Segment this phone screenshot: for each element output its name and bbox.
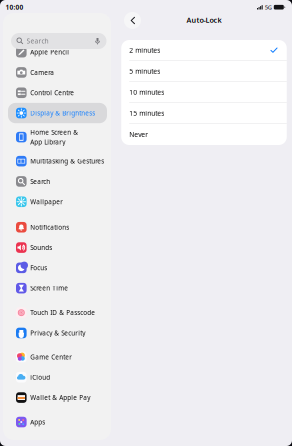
button[interactable]: Game Center: [8, 347, 107, 367]
button[interactable]: 5 minutes: [121, 61, 287, 82]
staticText: Home Screen &: [30, 128, 78, 136]
staticText: Auto-Lock: [186, 15, 221, 25]
button[interactable]: Home Screen &: [8, 123, 107, 151]
button[interactable]: Apple Pencil: [8, 42, 107, 62]
staticText: Screen Time: [30, 284, 68, 292]
staticText: Sounds: [30, 243, 52, 252]
staticText: Wallet & Apple Pay: [30, 393, 90, 402]
button[interactable]: 10 minutes: [121, 82, 287, 103]
button[interactable]: 2 minutes: [121, 40, 287, 61]
button[interactable]: Back: [124, 12, 141, 29]
button[interactable]: Privacy & Security: [8, 323, 107, 343]
staticText: Display & Brightness: [30, 109, 95, 117]
staticText: App Library: [30, 138, 65, 146]
staticText: 2 minutes: [129, 46, 160, 55]
staticText: 5 minutes: [129, 67, 160, 76]
button[interactable]: Search: [8, 171, 107, 192]
button[interactable]: Multitasking & Gestures: [8, 151, 107, 171]
staticText: 15 minutes: [129, 109, 164, 118]
button[interactable]: Never: [121, 124, 287, 145]
staticText: Wallpaper: [30, 197, 63, 206]
button[interactable]: Control Centre: [8, 83, 107, 103]
button[interactable]: Camera: [8, 62, 107, 83]
button[interactable]: Touch ID & Passcode: [8, 302, 107, 323]
staticText: Privacy & Security: [30, 329, 85, 337]
button[interactable]: 15 minutes: [121, 103, 287, 124]
staticText: Never: [129, 130, 148, 139]
staticText: Focus: [30, 264, 47, 272]
staticText: Multitasking & Gestures: [30, 157, 104, 165]
staticText: Control Centre: [30, 88, 74, 97]
button[interactable]: Wallpaper: [8, 192, 107, 212]
button[interactable]: Wallet & Apple Pay: [8, 387, 107, 408]
staticText: 10:00: [5, 3, 23, 12]
button[interactable]: Search: [11, 33, 106, 49]
staticText: Touch ID & Passcode: [30, 308, 95, 317]
staticText: 5G: [265, 3, 272, 11]
staticText: 10 minutes: [129, 88, 164, 97]
button[interactable]: Focus: [8, 258, 107, 278]
staticText: Search: [30, 177, 50, 186]
button[interactable]: Sounds: [8, 237, 107, 258]
staticText: Search: [26, 37, 48, 45]
staticText: Game Center: [30, 353, 72, 361]
staticText: Notifications: [30, 223, 69, 231]
button[interactable]: iCloud: [8, 367, 107, 387]
staticText: Apple Pencil: [30, 48, 69, 56]
button[interactable]: Screen Time: [8, 278, 107, 298]
button[interactable]: Notifications: [8, 217, 107, 237]
button[interactable]: Display & Brightness: [8, 103, 107, 123]
staticText: Apps: [30, 418, 45, 426]
button[interactable]: Apps: [8, 412, 107, 432]
staticText: Camera: [30, 68, 54, 77]
staticText: iCloud: [30, 373, 50, 381]
